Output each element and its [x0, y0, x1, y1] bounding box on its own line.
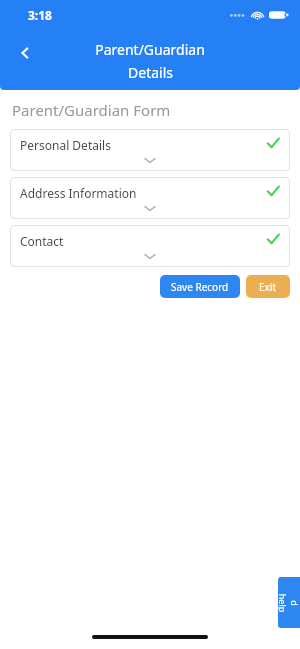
button[interactable]: Personal Details — [10, 129, 290, 171]
staticText: Parent/Guardian — [95, 40, 205, 59]
button[interactable]: Exit — [246, 275, 290, 298]
other: Expand — [142, 252, 158, 261]
button[interactable]: Back — [10, 38, 40, 68]
staticText: Exit — [259, 280, 277, 294]
staticText: Save Record — [171, 280, 229, 294]
staticText: Personal Details — [20, 137, 111, 153]
other: Expand — [142, 204, 158, 213]
button[interactable]: Save Record — [160, 275, 240, 298]
button[interactable]: Address Information — [10, 177, 290, 219]
other: Completed — [266, 232, 280, 246]
staticText: Need help? — [278, 592, 300, 614]
other: Expand — [142, 156, 158, 165]
other: Completed — [266, 136, 280, 150]
staticText: Contact — [20, 233, 64, 249]
other: Completed — [266, 184, 280, 198]
button[interactable]: Need help? — [278, 577, 300, 628]
button[interactable]: Contact — [10, 225, 290, 267]
staticText: Address Information — [20, 185, 137, 201]
staticText: Parent/Guardian Form — [12, 100, 171, 120]
staticText: Details — [128, 63, 173, 82]
staticText: 3:18 — [28, 7, 52, 23]
